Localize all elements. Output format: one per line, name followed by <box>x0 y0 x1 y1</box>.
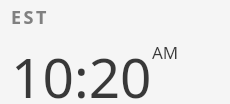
staticText: AM <box>152 41 179 64</box>
staticText: EST <box>11 5 49 30</box>
staticText: 10:20 <box>11 39 152 104</box>
